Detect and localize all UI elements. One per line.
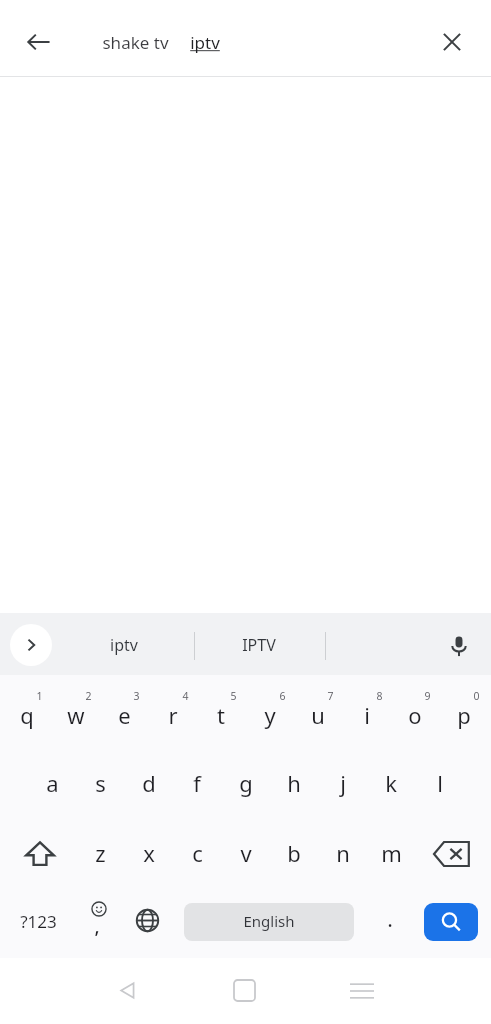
staticText: 9 — [424, 689, 431, 703]
staticText: g — [239, 768, 253, 798]
staticText: 2 — [85, 689, 92, 703]
button[interactable] — [173, 752, 221, 814]
button[interactable]: Back — [15, 18, 63, 66]
button[interactable]: Shift — [12, 822, 68, 884]
staticText: IPTV — [242, 634, 276, 656]
staticText: n — [336, 838, 350, 868]
button[interactable]: Backspace — [423, 822, 481, 884]
staticText: , — [94, 913, 100, 939]
staticText: 3 — [133, 689, 140, 703]
staticText: d — [142, 768, 156, 798]
button[interactable] — [222, 752, 270, 814]
staticText: . — [387, 907, 393, 933]
staticText: i — [364, 700, 370, 730]
staticText: b — [287, 838, 301, 868]
button[interactable] — [367, 822, 415, 884]
button[interactable] — [440, 682, 488, 744]
button[interactable]: Home — [215, 963, 275, 1019]
staticText: x — [143, 838, 155, 868]
button[interactable] — [184, 903, 354, 941]
button[interactable] — [100, 682, 148, 744]
button[interactable] — [3, 682, 51, 744]
staticText: w — [67, 700, 85, 730]
staticText: 5 — [230, 689, 237, 703]
button[interactable]: Clear — [428, 18, 476, 66]
staticText: p — [457, 700, 471, 730]
button[interactable] — [7, 892, 69, 950]
button[interactable]: Emoji and comma — [74, 892, 120, 950]
button[interactable] — [391, 682, 439, 744]
button[interactable] — [149, 682, 197, 744]
staticText: m — [381, 838, 402, 868]
staticText: ?123 — [20, 910, 57, 933]
staticText: 4 — [182, 689, 189, 703]
button[interactable]: Search — [424, 903, 478, 941]
staticText: q — [20, 700, 34, 730]
staticText: 8 — [376, 689, 383, 703]
button[interactable] — [294, 682, 342, 744]
staticText: 7 — [327, 689, 334, 703]
button[interactable] — [76, 822, 124, 884]
button[interactable]: Expand suggestions — [10, 624, 52, 666]
staticText: r — [168, 700, 178, 730]
staticText: 0 — [473, 689, 480, 703]
button[interactable] — [197, 620, 322, 668]
button[interactable]: Recent apps — [332, 963, 392, 1019]
button[interactable] — [173, 822, 221, 884]
staticText: t — [217, 700, 225, 730]
button[interactable] — [319, 822, 367, 884]
button[interactable] — [270, 752, 318, 814]
button[interactable] — [246, 682, 294, 744]
staticText: l — [437, 768, 443, 798]
button[interactable] — [62, 620, 187, 668]
button[interactable] — [88, 22, 388, 62]
staticText: z — [95, 838, 106, 868]
button[interactable]: Voice input — [433, 620, 485, 672]
button[interactable] — [343, 682, 391, 744]
staticText: iptv — [110, 634, 138, 656]
staticText: v — [240, 838, 252, 868]
button[interactable] — [76, 752, 124, 814]
button[interactable] — [197, 682, 245, 744]
staticText: y — [264, 700, 276, 730]
staticText: a — [46, 768, 59, 798]
staticText: f — [193, 768, 201, 798]
staticText: o — [408, 700, 422, 730]
button[interactable]: Back — [98, 963, 158, 1019]
button[interactable] — [125, 822, 173, 884]
staticText: k — [385, 768, 397, 798]
button[interactable] — [270, 822, 318, 884]
staticText: English — [243, 911, 295, 931]
button[interactable] — [416, 752, 464, 814]
button[interactable] — [125, 752, 173, 814]
button[interactable] — [28, 752, 76, 814]
button[interactable] — [367, 752, 415, 814]
staticText: c — [192, 838, 203, 868]
staticText: e — [118, 700, 131, 730]
staticText: j — [340, 768, 346, 798]
staticText: iptv — [190, 31, 220, 54]
staticText: shake tv — [100, 31, 171, 54]
staticText: 1 — [36, 689, 43, 703]
staticText: s — [95, 768, 106, 798]
button[interactable]: Period — [368, 892, 412, 950]
button[interactable]: Change language — [123, 892, 171, 950]
staticText: u — [311, 700, 325, 730]
button[interactable] — [319, 752, 367, 814]
button[interactable] — [222, 822, 270, 884]
staticText: h — [287, 768, 301, 798]
button[interactable] — [52, 682, 100, 744]
staticText: 6 — [279, 689, 286, 703]
